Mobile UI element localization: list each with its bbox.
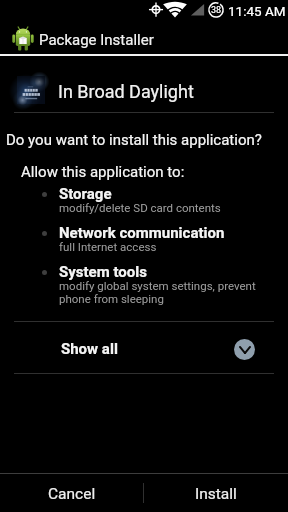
staticText: full Internet access <box>59 240 157 253</box>
staticText: Storage <box>59 185 112 203</box>
staticText: Allow this application to: <box>21 163 185 181</box>
staticText: Cancel <box>48 485 96 503</box>
staticText: Install <box>195 485 237 503</box>
button[interactable]: Install <box>144 474 288 512</box>
button[interactable]: Cancel <box>0 474 143 512</box>
staticText: Package Installer <box>39 31 154 49</box>
button[interactable]: Show all <box>0 322 288 373</box>
staticText: In Broad Daylight <box>58 81 194 102</box>
staticText: 38 <box>211 5 222 16</box>
staticText: Show all <box>61 340 118 358</box>
staticText: Network communication <box>59 224 225 242</box>
staticText: System tools <box>59 263 147 281</box>
other: Expand permissions <box>234 339 255 360</box>
staticText: 11:45 AM <box>228 3 286 19</box>
staticText: modify global system settings, prevent p… <box>59 279 256 305</box>
staticText: modify/delete SD card contents <box>59 201 221 214</box>
staticText: Do you want to install this application? <box>6 131 262 149</box>
